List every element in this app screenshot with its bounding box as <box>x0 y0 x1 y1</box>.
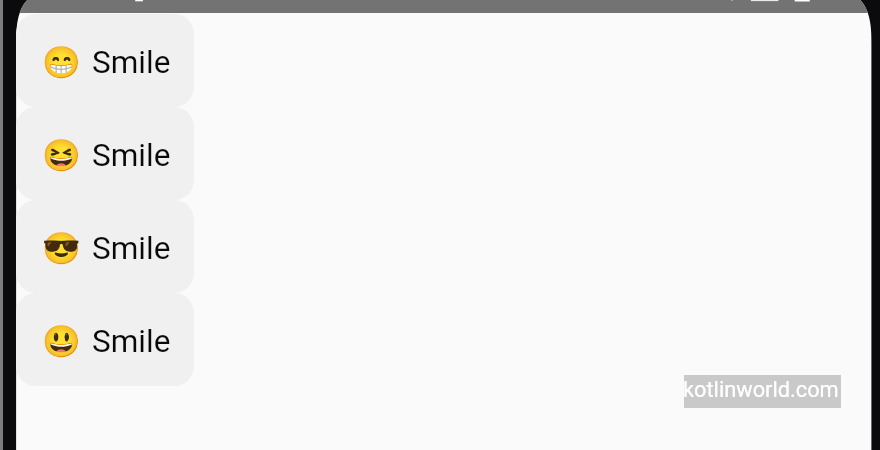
staticText: 😃 <box>42 323 81 359</box>
staticText: 😆 <box>42 137 81 173</box>
staticText: 😎 <box>42 230 81 266</box>
button[interactable]: Smile <box>16 293 194 386</box>
button[interactable]: Smile <box>16 14 194 107</box>
staticText: Smile <box>92 323 171 360</box>
staticText: kotlinworld.com <box>683 377 839 403</box>
staticText: Smile <box>92 137 171 174</box>
staticText: 😁 <box>42 44 81 80</box>
staticText: Smile <box>92 230 171 267</box>
staticText: Smile <box>92 44 171 81</box>
button[interactable]: Smile <box>16 107 194 200</box>
button[interactable]: Smile <box>16 200 194 293</box>
